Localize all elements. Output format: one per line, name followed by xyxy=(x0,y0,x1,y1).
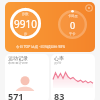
staticText: 步 xyxy=(24,32,28,36)
staticText: 次/分 xyxy=(54,61,62,65)
staticText: 83 xyxy=(54,90,65,100)
staticText: 千卡 xyxy=(69,32,76,36)
staticText: 步数 xyxy=(22,12,29,16)
button[interactable]: Settings xyxy=(5,2,95,52)
button[interactable]: 心率 xyxy=(51,54,95,100)
staticText: 心率 xyxy=(54,55,64,61)
staticText: 运动记录 xyxy=(8,55,28,61)
staticText: 571 xyxy=(8,90,24,100)
staticText: 9910 xyxy=(14,17,37,31)
staticText: 今日 TOP 达成 · 已完成目标 98% xyxy=(16,44,66,49)
staticText: 本周 累计记录 xyxy=(8,61,28,65)
button[interactable]: Settings xyxy=(84,3,94,13)
button[interactable]: 运动记录 xyxy=(5,54,49,100)
staticText: 卡路里 xyxy=(68,14,78,18)
staticText: 0 xyxy=(70,19,76,31)
